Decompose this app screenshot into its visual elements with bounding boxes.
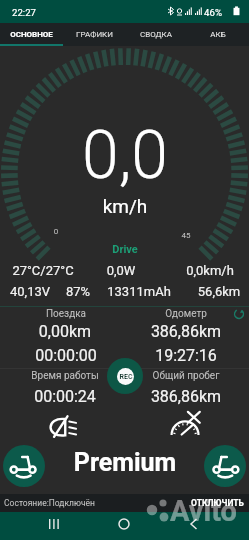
staticText: 0,00km (5, 322, 125, 341)
staticText: 22:27 (12, 7, 36, 18)
staticText: 56,6km (99, 284, 249, 299)
button[interactable]: АКБ (187, 23, 249, 46)
staticText: 00:00:00 (6, 346, 126, 365)
button[interactable]: Сброс одометра (231, 306, 247, 322)
staticText: Общий пробег (126, 370, 246, 382)
button[interactable]: Назад (184, 514, 204, 534)
staticText: 45 (66, 231, 249, 240)
staticText: 0,0 (5, 117, 245, 194)
button[interactable]: REC (107, 358, 143, 394)
staticText: Drive (5, 243, 245, 256)
staticText: ОСНОВНОЕ (10, 30, 53, 39)
staticText: km/h (5, 195, 245, 217)
button[interactable]: Домой (114, 514, 134, 534)
staticText: ГРАФИКИ (76, 30, 113, 39)
staticText: 0,0km/h (90, 263, 249, 278)
staticText: 00:00:24 (5, 387, 125, 406)
staticText: 46% (204, 7, 222, 18)
staticText: 27°C/27°C (0, 263, 163, 278)
staticText: 19:27:16 (126, 346, 246, 365)
staticText: 0,0W (1, 263, 241, 278)
button[interactable]: ОСНОВНОЕ (0, 23, 63, 46)
staticText: ОТКЛЮЧИТЬ (191, 498, 244, 508)
staticText: Premium (5, 448, 245, 477)
staticText: 386,86km (126, 387, 246, 406)
staticText: 0 (0, 227, 176, 236)
staticText: Состояние:Подключён (4, 498, 95, 508)
staticText: Одометр (126, 308, 246, 320)
button[interactable]: Недавние (44, 514, 64, 534)
button[interactable]: Фары выключены (47, 408, 79, 440)
staticText: Время работы (5, 370, 125, 382)
button[interactable]: Самокат 2 (204, 445, 246, 487)
staticText: 40,13V (0, 284, 150, 299)
button[interactable]: ОТКЛЮЧИТЬ (186, 495, 249, 511)
staticText: 87% (0, 284, 198, 299)
button[interactable]: СВОДКА (125, 23, 187, 46)
staticText: REC (119, 373, 133, 381)
staticText: АКБ (210, 30, 226, 39)
staticText: 13311mAh (19, 284, 249, 299)
button[interactable]: Самокат (3, 445, 45, 487)
button[interactable]: Круиз-контроль выключен (170, 408, 202, 440)
staticText: СВОДКА (140, 30, 172, 39)
button[interactable]: ГРАФИКИ (63, 23, 125, 46)
staticText: Поездка (6, 308, 126, 320)
staticText: 386,86km (126, 322, 246, 341)
staticText: Avito (170, 494, 237, 528)
